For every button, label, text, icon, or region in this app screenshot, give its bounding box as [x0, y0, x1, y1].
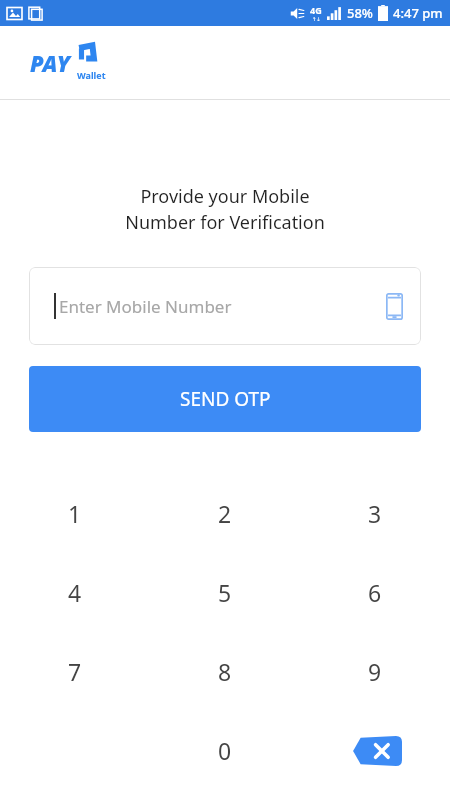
- staticText: 4:47 pm: [393, 4, 443, 22]
- button[interactable]: SEND OTP: [29, 366, 421, 432]
- button[interactable]: 7: [0, 632, 150, 711]
- staticText: 7: [68, 656, 82, 687]
- button[interactable]: 6: [300, 553, 450, 632]
- staticText: 5: [218, 577, 232, 608]
- staticText: 4G: [310, 4, 322, 16]
- staticText: 1: [68, 498, 82, 529]
- staticText: 0: [218, 735, 232, 766]
- button[interactable]: 8: [150, 632, 300, 711]
- button[interactable]: 4: [0, 553, 150, 632]
- staticText: 8: [218, 656, 232, 687]
- button[interactable]: Enter Mobile Number: [29, 267, 421, 345]
- button[interactable]: 5: [150, 553, 300, 632]
- button[interactable]: 9: [300, 632, 450, 711]
- staticText: 4: [68, 577, 82, 608]
- staticText: SEND OTP: [180, 386, 271, 412]
- staticText: 9: [368, 656, 382, 687]
- staticText: 2: [218, 498, 232, 529]
- staticText: Provide your Mobile Number for Verificat…: [125, 184, 325, 235]
- button[interactable]: 2: [150, 474, 300, 553]
- staticText: 3: [368, 498, 382, 529]
- button[interactable]: 0: [150, 711, 300, 790]
- staticText: 6: [368, 577, 382, 608]
- staticText: 58%: [347, 4, 373, 22]
- staticText: ↑↓: [312, 16, 321, 22]
- staticText: Enter Mobile Number: [59, 295, 232, 318]
- button[interactable]: 1: [0, 474, 150, 553]
- button[interactable]: Backspace: [300, 711, 450, 790]
- staticText: Wallet: [77, 69, 106, 81]
- staticText: PAY: [30, 48, 71, 78]
- button[interactable]: 3: [300, 474, 450, 553]
